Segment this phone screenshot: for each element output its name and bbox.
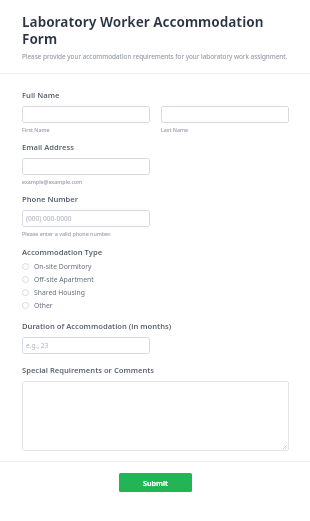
staticText: Please provide your accommodation requir… xyxy=(22,52,288,61)
staticText: First Name xyxy=(22,126,50,133)
staticText: Laboratory Worker Accommodation Form xyxy=(22,13,290,48)
staticText: e.g., 23 xyxy=(26,341,49,350)
staticText: Off-site Apartment xyxy=(34,275,94,284)
staticText: Special Requirements or Comments xyxy=(22,365,155,375)
staticText: Duration of Accommodation (in months) xyxy=(22,321,172,331)
button[interactable]: Off-site Apartment xyxy=(22,273,289,286)
button[interactable]: Other xyxy=(22,299,289,312)
staticText: Full Name xyxy=(22,90,60,100)
button[interactable]: (000) 000-0000 xyxy=(22,210,150,227)
staticText: (000) 000-0000 xyxy=(26,214,72,223)
staticText: Phone Number xyxy=(22,194,79,204)
button[interactable]: Shared Housing xyxy=(22,286,289,299)
staticText: Last Name xyxy=(161,126,188,133)
staticText: Accommodation Type xyxy=(22,247,103,257)
staticText: Shared Housing xyxy=(34,288,85,297)
button[interactable] xyxy=(161,106,289,123)
button[interactable] xyxy=(22,158,150,175)
staticText: example@example.com xyxy=(22,178,83,185)
button[interactable]: On-site Dormitory xyxy=(22,260,289,273)
button[interactable] xyxy=(22,106,150,123)
staticText: Submit xyxy=(143,478,168,488)
button[interactable] xyxy=(22,381,289,451)
button[interactable]: e.g., 23 xyxy=(22,337,150,354)
staticText: Email Address xyxy=(22,142,74,152)
staticText: On-site Dormitory xyxy=(34,262,92,271)
staticText: Please enter a valid phone number. xyxy=(22,230,111,237)
button[interactable]: Submit xyxy=(119,473,192,492)
staticText: Other xyxy=(34,301,53,310)
